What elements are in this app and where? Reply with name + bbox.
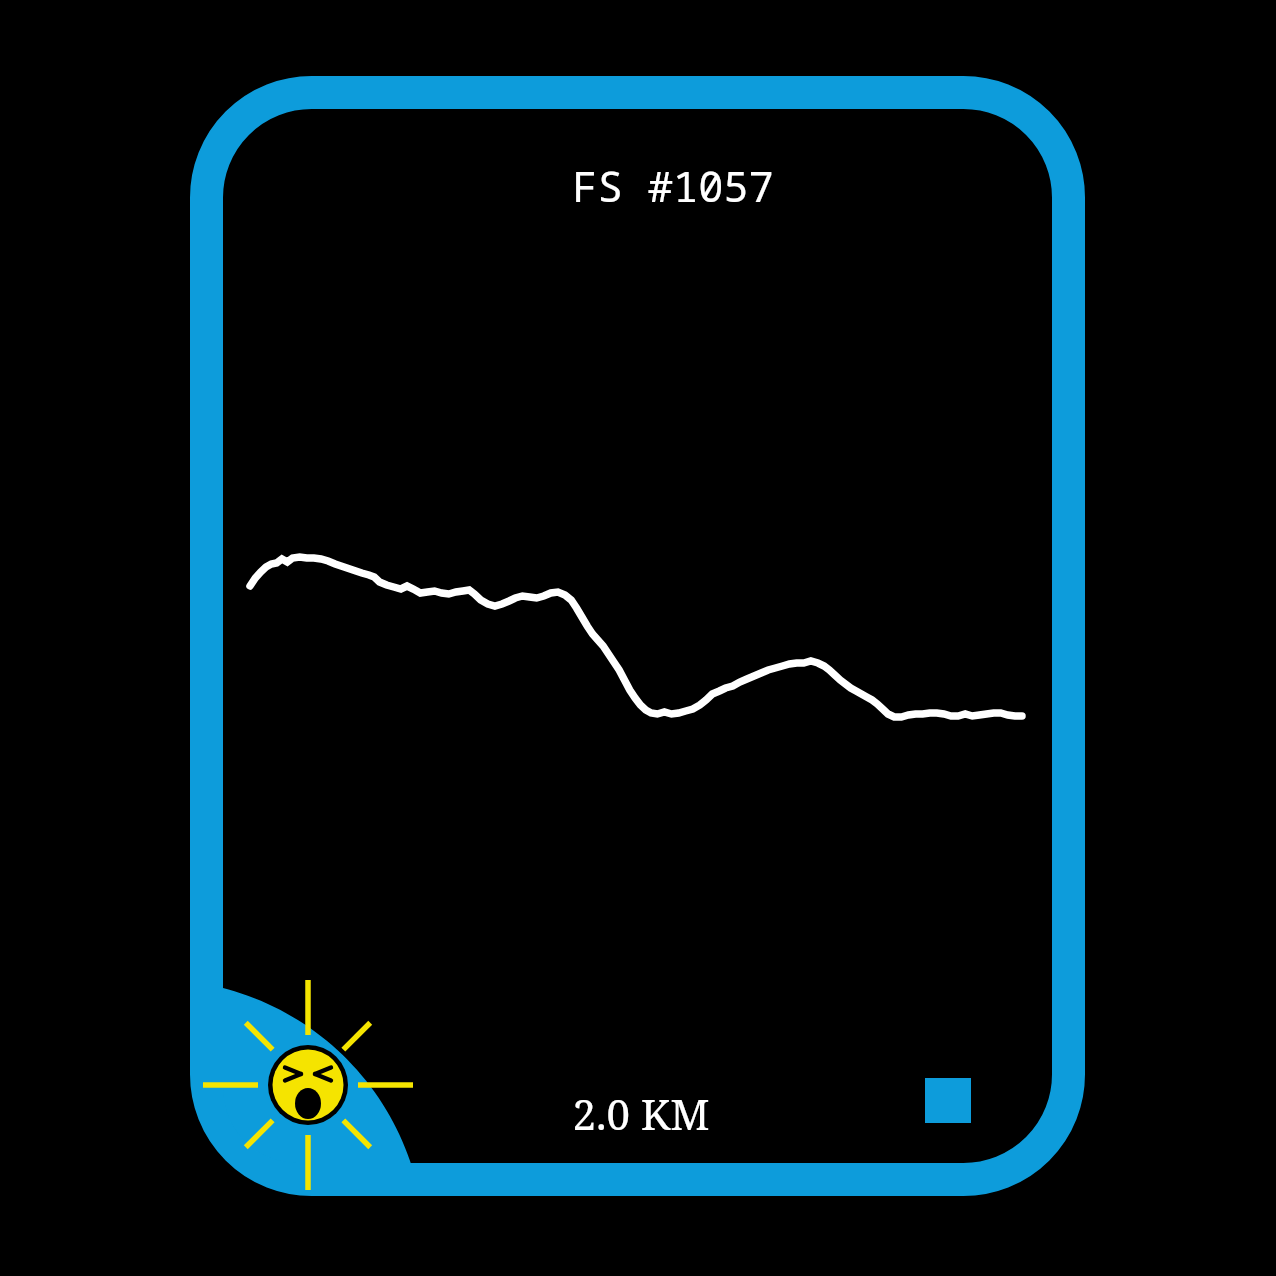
button[interactable]: Sunny weather xyxy=(203,980,413,1190)
button[interactable]: 2.0 KM xyxy=(572,1085,710,1142)
button[interactable]: FS #1057 xyxy=(572,157,774,214)
button[interactable]: Map legend xyxy=(925,1078,971,1124)
